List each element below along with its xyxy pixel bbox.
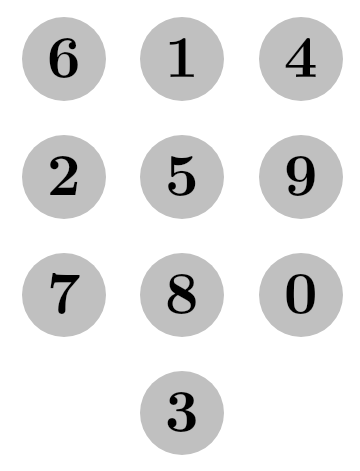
button[interactable]: 4 [259, 17, 343, 101]
button[interactable]: 6 [22, 17, 106, 101]
staticText: 2 [47, 135, 81, 212]
staticText: 0 [284, 253, 318, 330]
button[interactable]: 2 [22, 135, 106, 219]
staticText: 9 [284, 135, 318, 212]
staticText: 7 [47, 253, 81, 330]
button[interactable]: 8 [140, 253, 224, 337]
staticText: 1 [165, 17, 199, 94]
staticText: 5 [165, 135, 199, 212]
button[interactable]: 5 [140, 135, 224, 219]
staticText: 4 [284, 17, 318, 94]
staticText: 8 [165, 253, 199, 330]
button[interactable]: 7 [22, 253, 106, 337]
button[interactable]: 3 [140, 371, 224, 455]
staticText: 6 [47, 17, 81, 94]
staticText: 3 [165, 371, 199, 448]
button[interactable]: 0 [259, 253, 343, 337]
button[interactable]: 1 [140, 17, 224, 101]
button[interactable]: 9 [259, 135, 343, 219]
